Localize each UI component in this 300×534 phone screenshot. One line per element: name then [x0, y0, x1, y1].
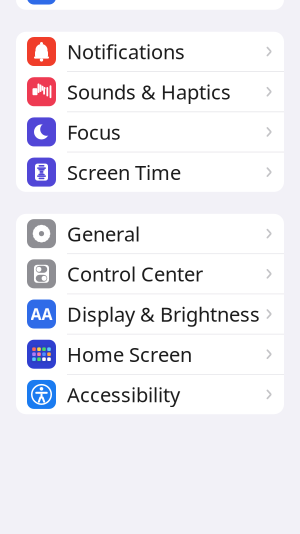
button[interactable]: Home Screen	[16, 334, 284, 375]
button[interactable]: Sounds & Haptics	[16, 72, 284, 112]
button[interactable]: Screen Time	[16, 152, 284, 192]
staticText: Control Center	[67, 260, 203, 287]
staticText: Sounds & Haptics	[67, 78, 231, 105]
button[interactable]: Control Center	[16, 254, 284, 294]
button[interactable]: AA	[16, 294, 284, 334]
button[interactable]: Focus	[16, 112, 284, 152]
staticText: Display & Brightness	[67, 301, 260, 327]
staticText: Accessibility	[67, 381, 180, 408]
button[interactable]: Notifications	[16, 32, 284, 72]
staticText: General	[67, 220, 140, 247]
staticText: Home Screen	[67, 341, 192, 367]
staticText: Focus	[67, 119, 121, 145]
staticText: Screen Time	[67, 159, 181, 185]
staticText: AA	[30, 303, 52, 325]
button[interactable]: VPN	[16, 0, 284, 10]
button[interactable]: Accessibility	[16, 375, 284, 414]
button[interactable]: General	[16, 214, 284, 254]
staticText: Notifications	[67, 38, 185, 65]
